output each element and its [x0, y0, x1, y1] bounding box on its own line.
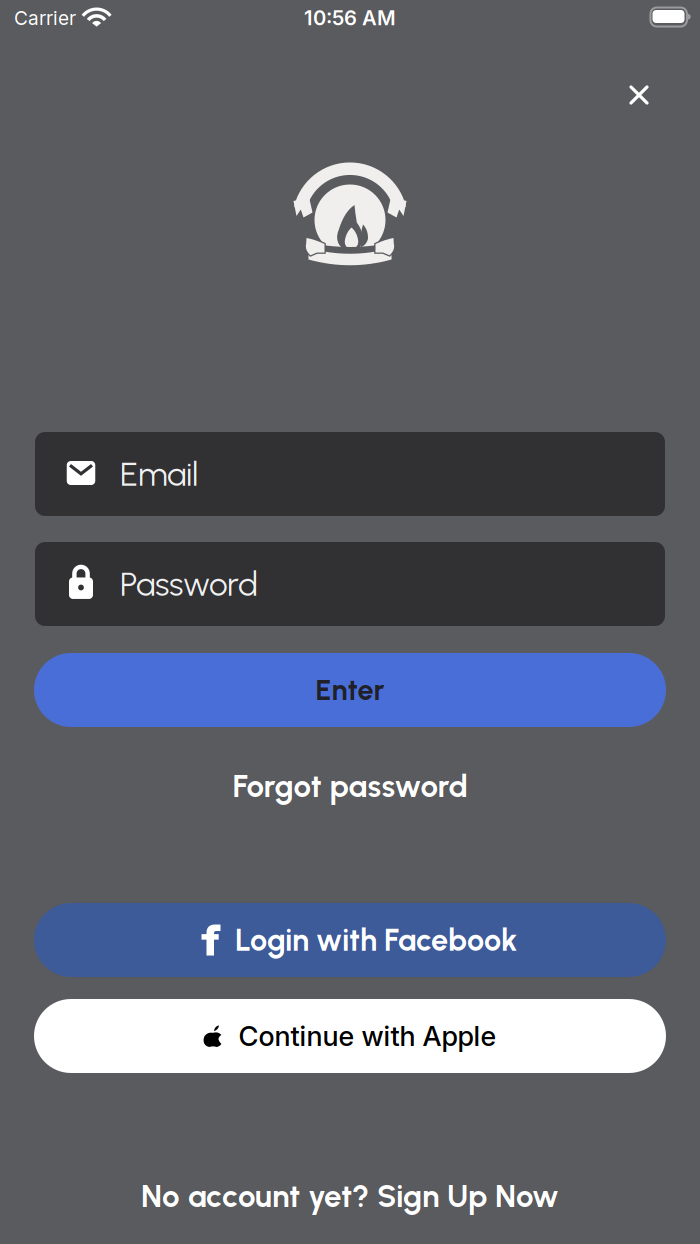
button[interactable]: No account yet? Sign Up Now: [141, 1177, 559, 1215]
staticText: Login with Facebook: [235, 922, 517, 958]
staticText: No account yet? Sign Up Now: [141, 1177, 559, 1215]
staticText: Email: [120, 454, 198, 494]
staticText: Continue with Apple: [238, 1019, 496, 1053]
staticText: Password: [120, 564, 258, 604]
button[interactable]: Email: [35, 432, 665, 516]
staticText: 10:56 AM: [304, 6, 396, 30]
button[interactable]: Enter: [34, 653, 666, 727]
button[interactable]: [618, 74, 660, 116]
button[interactable]: Continue with Apple: [34, 999, 666, 1073]
button[interactable]: Password: [35, 542, 665, 626]
staticText: Enter: [315, 673, 384, 707]
button[interactable]: Forgot password: [232, 767, 467, 805]
button[interactable]: Login with Facebook: [34, 903, 666, 977]
staticText: Carrier: [14, 6, 76, 30]
staticText: Forgot password: [232, 767, 467, 805]
